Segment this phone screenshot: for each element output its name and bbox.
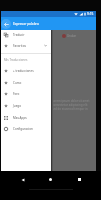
button[interactable]: Juego xyxy=(1,100,51,111)
staticText: Mis Traducciones xyxy=(4,58,28,62)
staticText: Foro xyxy=(13,92,20,96)
staticText: Lorem ipsum dolor sit amet xyxy=(52,99,90,103)
button[interactable]: Back xyxy=(1,19,11,29)
button[interactable]: Home xyxy=(44,173,57,186)
staticText: Mas Apps xyxy=(13,116,27,120)
button[interactable]: Favoritos xyxy=(1,40,51,51)
staticText: + traducciones xyxy=(13,69,34,73)
button[interactable]: Curso xyxy=(1,77,51,88)
button[interactable]: Foro xyxy=(1,88,51,99)
staticText: Traducir xyxy=(13,33,25,37)
staticText: 9:15 xyxy=(87,12,94,16)
staticText: Expresar palabra xyxy=(13,22,39,26)
button[interactable]: Traducir xyxy=(1,29,51,40)
button[interactable]: Back xyxy=(16,173,29,186)
staticText: Curso xyxy=(13,81,22,85)
button[interactable]: Mas Apps xyxy=(1,112,51,123)
staticText: Configuracion xyxy=(13,127,33,131)
button[interactable]: Configuracion xyxy=(1,123,51,134)
staticText: Grabar xyxy=(67,34,77,38)
button[interactable]: + traducciones xyxy=(1,65,51,76)
staticText: Favoritos xyxy=(13,44,26,48)
button[interactable]: Recent apps xyxy=(73,173,86,186)
staticText: consectetur adipiscing elit xyxy=(52,103,88,107)
staticText: sed do eiusmod tempor in xyxy=(52,107,88,111)
staticText: Juego xyxy=(13,104,22,108)
